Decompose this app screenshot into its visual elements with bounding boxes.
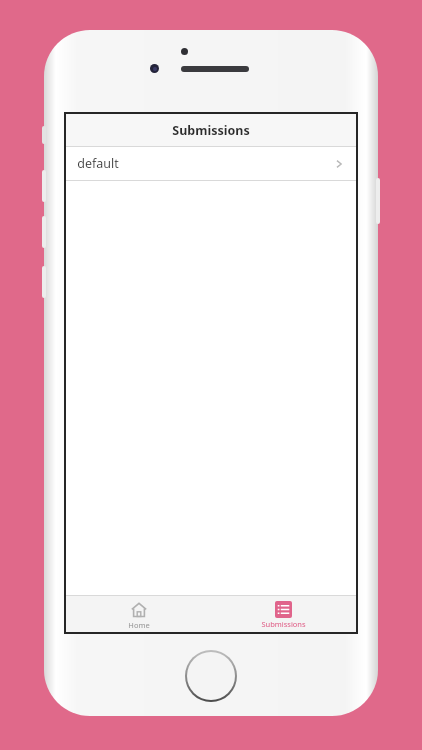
staticText: Submissions: [172, 122, 250, 139]
staticText: Submissions: [261, 619, 306, 629]
staticText: default: [77, 155, 119, 172]
button[interactable]: Home button: [187, 652, 235, 700]
button[interactable]: Home: [66, 599, 211, 630]
button[interactable]: default: [66, 147, 356, 180]
button[interactable]: Submissions: [211, 599, 356, 629]
staticText: Home: [128, 620, 150, 630]
